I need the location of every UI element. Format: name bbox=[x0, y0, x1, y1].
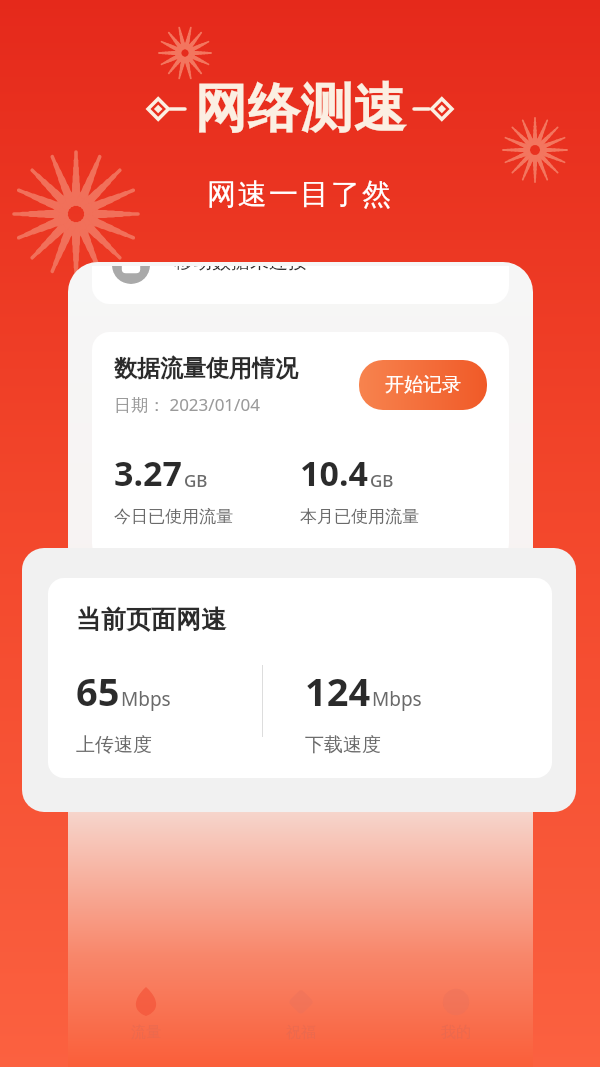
staticText: 网速一目了然 bbox=[0, 176, 600, 213]
staticText: 开始记录 bbox=[385, 373, 461, 397]
staticText: 65 bbox=[76, 665, 120, 717]
staticText: 124 bbox=[305, 665, 371, 717]
staticText: 下载速度 bbox=[305, 733, 381, 757]
staticText: GB bbox=[370, 469, 394, 492]
button[interactable]: 移动数据未连接 bbox=[92, 266, 509, 304]
staticText: 移动数据未连接 bbox=[174, 266, 307, 274]
staticText: 日期： 2023/01/04 bbox=[114, 393, 260, 416]
button[interactable]: 当前页面网速 bbox=[48, 578, 552, 778]
staticText: 当前页面网速 bbox=[76, 604, 226, 635]
button[interactable]: 我的 bbox=[378, 987, 533, 1042]
button[interactable]: 流量 bbox=[68, 987, 223, 1042]
staticText: Mbps bbox=[121, 686, 171, 712]
staticText: 10.4 bbox=[300, 450, 368, 496]
staticText: 3.27 bbox=[114, 450, 182, 496]
button[interactable]: 开始记录 bbox=[359, 360, 487, 410]
staticText: 上传速度 bbox=[76, 733, 152, 757]
staticText: 本月已使用流量 bbox=[300, 506, 419, 527]
staticText: 数据流量使用情况 bbox=[114, 354, 298, 383]
button[interactable]: 祝福 bbox=[223, 987, 378, 1042]
staticText: GB bbox=[184, 469, 208, 492]
staticText: 今日已使用流量 bbox=[114, 506, 233, 527]
staticText: 祝福 bbox=[286, 1023, 316, 1042]
staticText: 流量 bbox=[131, 1023, 161, 1042]
staticText: Mbps bbox=[372, 686, 422, 712]
button[interactable]: 数据流量使用情况 bbox=[92, 332, 509, 561]
staticText: 网络测速 bbox=[194, 76, 406, 142]
staticText: 我的 bbox=[441, 1023, 471, 1042]
